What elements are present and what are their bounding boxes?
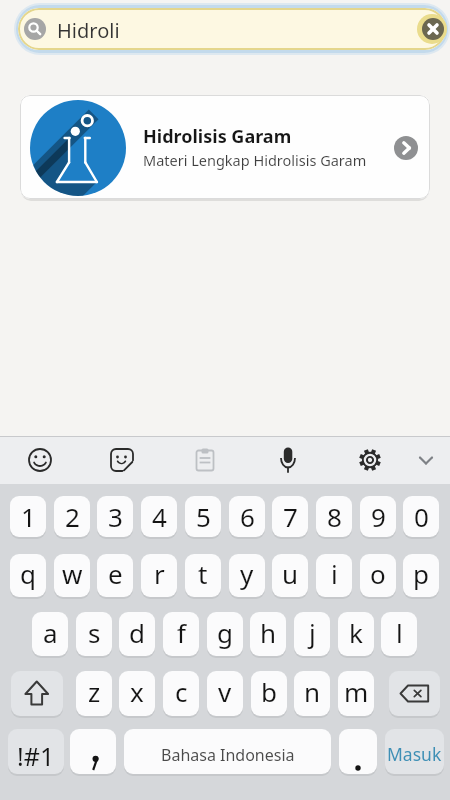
button[interactable] (18, 8, 446, 50)
staticText: 2 (65, 499, 80, 534)
button[interactable]: 3 (97, 496, 133, 537)
button[interactable]: o (360, 554, 396, 597)
button[interactable] (404, 438, 448, 483)
button[interactable]: z (76, 671, 112, 716)
staticText: 3 (108, 499, 123, 534)
staticText: u (282, 556, 299, 591)
staticText: c (175, 674, 188, 709)
staticText: l (396, 615, 403, 650)
staticText: d (129, 615, 145, 650)
button[interactable]: p (403, 554, 439, 597)
staticText: m (344, 674, 369, 709)
button[interactable]: a (32, 612, 68, 656)
staticText: q (20, 556, 36, 591)
button[interactable]: h (250, 612, 286, 656)
staticText: f (177, 615, 186, 650)
button[interactable]: t (185, 554, 221, 597)
button[interactable]: y (229, 554, 265, 597)
staticText: 5 (196, 499, 211, 534)
button[interactable] (266, 438, 310, 483)
staticText: n (304, 674, 321, 709)
button[interactable]: v (207, 671, 243, 716)
button[interactable]: 7 (272, 496, 308, 537)
button[interactable]: x (119, 671, 155, 716)
staticText: 8 (327, 499, 342, 534)
button[interactable]: 6 (229, 496, 265, 537)
staticText: 0 (414, 499, 429, 534)
button[interactable]: n (294, 671, 330, 716)
staticText: k (349, 615, 363, 650)
button[interactable]: d (119, 612, 155, 656)
staticText: o (370, 556, 386, 591)
staticText: 6 (240, 499, 255, 534)
staticText: g (217, 615, 233, 650)
button[interactable]: c (163, 671, 199, 716)
staticText: e (108, 556, 123, 591)
button[interactable]: Bahasa Indonesia (124, 729, 331, 774)
staticText: s (88, 615, 101, 650)
button[interactable]: 5 (185, 496, 221, 537)
staticText: 7 (283, 499, 298, 534)
button[interactable] (70, 729, 116, 774)
staticText: Masuk (387, 742, 442, 766)
button[interactable] (11, 671, 63, 716)
button[interactable] (20, 95, 430, 199)
button[interactable]: q (10, 554, 46, 597)
button[interactable] (348, 438, 392, 483)
staticText: r (154, 556, 165, 591)
staticText: z (88, 674, 101, 709)
button[interactable]: k (338, 612, 374, 656)
button[interactable]: u (272, 554, 308, 597)
staticText: Hidrolisis Garam (143, 124, 292, 149)
button[interactable]: !#1 (8, 729, 64, 774)
button[interactable]: r (141, 554, 177, 597)
button[interactable] (18, 438, 62, 483)
button[interactable]: f (163, 612, 199, 656)
button[interactable]: 1 (10, 496, 46, 537)
button[interactable]: 2 (54, 496, 90, 537)
staticText: y (240, 556, 254, 591)
button[interactable]: s (76, 612, 112, 656)
staticText: t (198, 556, 208, 591)
staticText: 4 (152, 499, 167, 534)
button[interactable]: 9 (360, 496, 396, 537)
button[interactable] (394, 136, 418, 160)
button[interactable]: l (381, 612, 417, 656)
staticText: 1 (21, 499, 36, 534)
button[interactable]: e (97, 554, 133, 597)
button[interactable] (389, 671, 440, 716)
button[interactable] (339, 729, 377, 774)
staticText: a (43, 615, 58, 650)
button[interactable]: 4 (141, 496, 177, 537)
button[interactable]: i (316, 554, 352, 597)
button[interactable] (183, 438, 227, 483)
button[interactable]: Masuk (385, 729, 444, 774)
button[interactable]: m (338, 671, 374, 716)
staticText: p (413, 556, 429, 591)
button[interactable]: j (294, 612, 330, 656)
staticText: b (261, 674, 277, 709)
staticText: 9 (371, 499, 386, 534)
staticText: w (62, 556, 83, 591)
button[interactable]: 8 (316, 496, 352, 537)
staticText: x (130, 674, 144, 709)
button[interactable] (422, 18, 444, 40)
staticText: Materi Lengkap Hidrolisis Garam (143, 150, 367, 170)
staticText: j (309, 615, 316, 650)
staticText: v (218, 674, 232, 709)
staticText: Bahasa Indonesia (161, 744, 295, 766)
staticText: i (331, 556, 338, 591)
staticText: !#1 (17, 739, 55, 773)
button[interactable]: b (251, 671, 287, 716)
button[interactable]: w (54, 554, 90, 597)
staticText: Hidroli (57, 17, 120, 44)
button[interactable]: g (207, 612, 243, 656)
button[interactable] (100, 438, 144, 483)
button[interactable]: 0 (403, 496, 439, 537)
staticText: h (260, 615, 277, 650)
